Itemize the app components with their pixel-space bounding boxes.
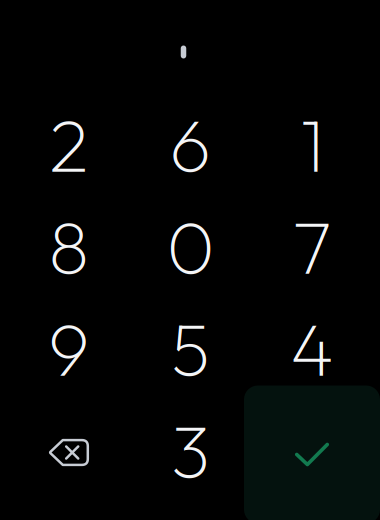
button[interactable]: 8: [8, 195, 130, 297]
button[interactable]: 6: [129, 93, 251, 195]
staticText: 1: [300, 98, 324, 191]
button[interactable]: 3: [129, 399, 251, 501]
button[interactable]: 4: [251, 297, 373, 399]
staticText: 4: [290, 302, 334, 395]
button[interactable]: 2: [8, 93, 130, 195]
button[interactable]: Confirm: [244, 385, 380, 520]
staticText: 6: [169, 98, 211, 191]
button[interactable]: 5: [129, 297, 251, 399]
button[interactable]: 0: [129, 195, 251, 297]
staticText: 7: [293, 200, 332, 293]
button[interactable]: 7: [251, 195, 373, 297]
button[interactable]: 1: [251, 93, 373, 195]
staticText: 2: [49, 98, 89, 191]
staticText: 8: [48, 200, 89, 293]
staticText: 3: [171, 404, 210, 497]
button[interactable]: 9: [8, 297, 130, 399]
button[interactable]: Delete: [8, 401, 130, 503]
staticText: 9: [48, 302, 90, 395]
staticText: 5: [171, 302, 210, 395]
staticText: 0: [166, 200, 214, 293]
